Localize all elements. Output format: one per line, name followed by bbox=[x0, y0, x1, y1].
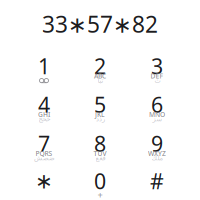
button[interactable]: 1 bbox=[16, 53, 72, 91]
button[interactable]: 6 bbox=[129, 91, 185, 129]
staticText: 33∗57∗82 bbox=[42, 9, 158, 39]
staticText: 3 bbox=[151, 52, 163, 80]
staticText: 7 bbox=[38, 129, 50, 158]
button[interactable]: 9 bbox=[129, 130, 185, 168]
staticText: سز bbox=[152, 115, 162, 123]
staticText: 8 bbox=[94, 129, 106, 158]
button[interactable]: 8 bbox=[72, 130, 128, 168]
button[interactable]: # bbox=[129, 168, 185, 200]
button[interactable]: ∗ bbox=[16, 168, 72, 200]
staticText: TUV bbox=[93, 149, 106, 158]
staticText: + bbox=[97, 189, 102, 200]
staticText: تبا bbox=[97, 77, 103, 84]
staticText: PQRS bbox=[35, 149, 52, 158]
staticText: WXYZ bbox=[148, 149, 166, 158]
staticText: 0 bbox=[94, 167, 106, 195]
staticText: 9 bbox=[151, 129, 163, 158]
button[interactable]: 4 bbox=[16, 91, 72, 129]
staticText: ABC bbox=[94, 72, 106, 80]
staticText: DEF bbox=[150, 72, 163, 80]
staticText: MNO bbox=[149, 110, 165, 119]
staticText: 6 bbox=[151, 90, 163, 119]
staticText: 5 bbox=[94, 90, 106, 119]
staticText: فغع bbox=[95, 154, 105, 162]
staticText: ث bbox=[154, 77, 160, 84]
staticText: رذد bbox=[95, 115, 104, 123]
staticText: خحج bbox=[38, 115, 50, 123]
button[interactable]: 3 bbox=[129, 53, 185, 91]
button[interactable]: 0 bbox=[72, 168, 128, 200]
button[interactable]: 5 bbox=[72, 91, 128, 129]
staticText: 1 bbox=[38, 52, 50, 80]
staticText: JKL bbox=[95, 110, 105, 119]
button[interactable]: 7 bbox=[16, 130, 72, 168]
staticText: ضصش bbox=[33, 154, 54, 162]
staticText: 4 bbox=[38, 90, 50, 119]
staticText: GHI bbox=[38, 110, 50, 119]
staticText: 2 bbox=[94, 52, 106, 80]
button[interactable]: 2 bbox=[72, 53, 128, 91]
staticText: # bbox=[150, 167, 164, 195]
staticText: ∗ bbox=[35, 169, 53, 193]
staticText: ملك bbox=[151, 154, 163, 162]
